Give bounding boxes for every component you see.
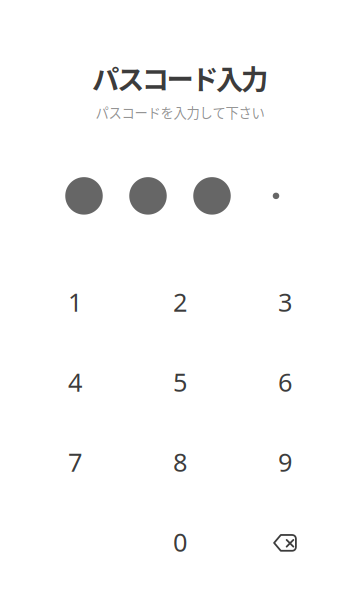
button[interactable]: 0 bbox=[127, 502, 232, 582]
staticText: 5 bbox=[173, 365, 187, 399]
button[interactable]: 5 bbox=[127, 342, 232, 422]
staticText: 6 bbox=[278, 365, 292, 399]
staticText: 9 bbox=[278, 445, 292, 479]
button[interactable]: 4 bbox=[22, 342, 127, 422]
staticText: パスコード入力 bbox=[92, 58, 268, 98]
staticText: 0 bbox=[173, 525, 187, 559]
button[interactable]: 6 bbox=[232, 342, 337, 422]
staticText: 4 bbox=[68, 365, 82, 399]
button[interactable]: 7 bbox=[22, 422, 127, 502]
staticText: 7 bbox=[68, 445, 82, 479]
button[interactable]: 8 bbox=[127, 422, 232, 502]
button[interactable]: 9 bbox=[232, 422, 337, 502]
button[interactable]: 1 bbox=[22, 262, 127, 342]
button[interactable]: Delete bbox=[232, 502, 337, 582]
button[interactable]: 2 bbox=[127, 262, 232, 342]
staticText: 1 bbox=[68, 285, 82, 319]
staticText: 3 bbox=[278, 285, 292, 319]
staticText: パスコードを入力して下さい bbox=[95, 103, 264, 122]
staticText: 2 bbox=[173, 285, 187, 319]
button[interactable]: 3 bbox=[232, 262, 337, 342]
staticText: 8 bbox=[173, 445, 187, 479]
